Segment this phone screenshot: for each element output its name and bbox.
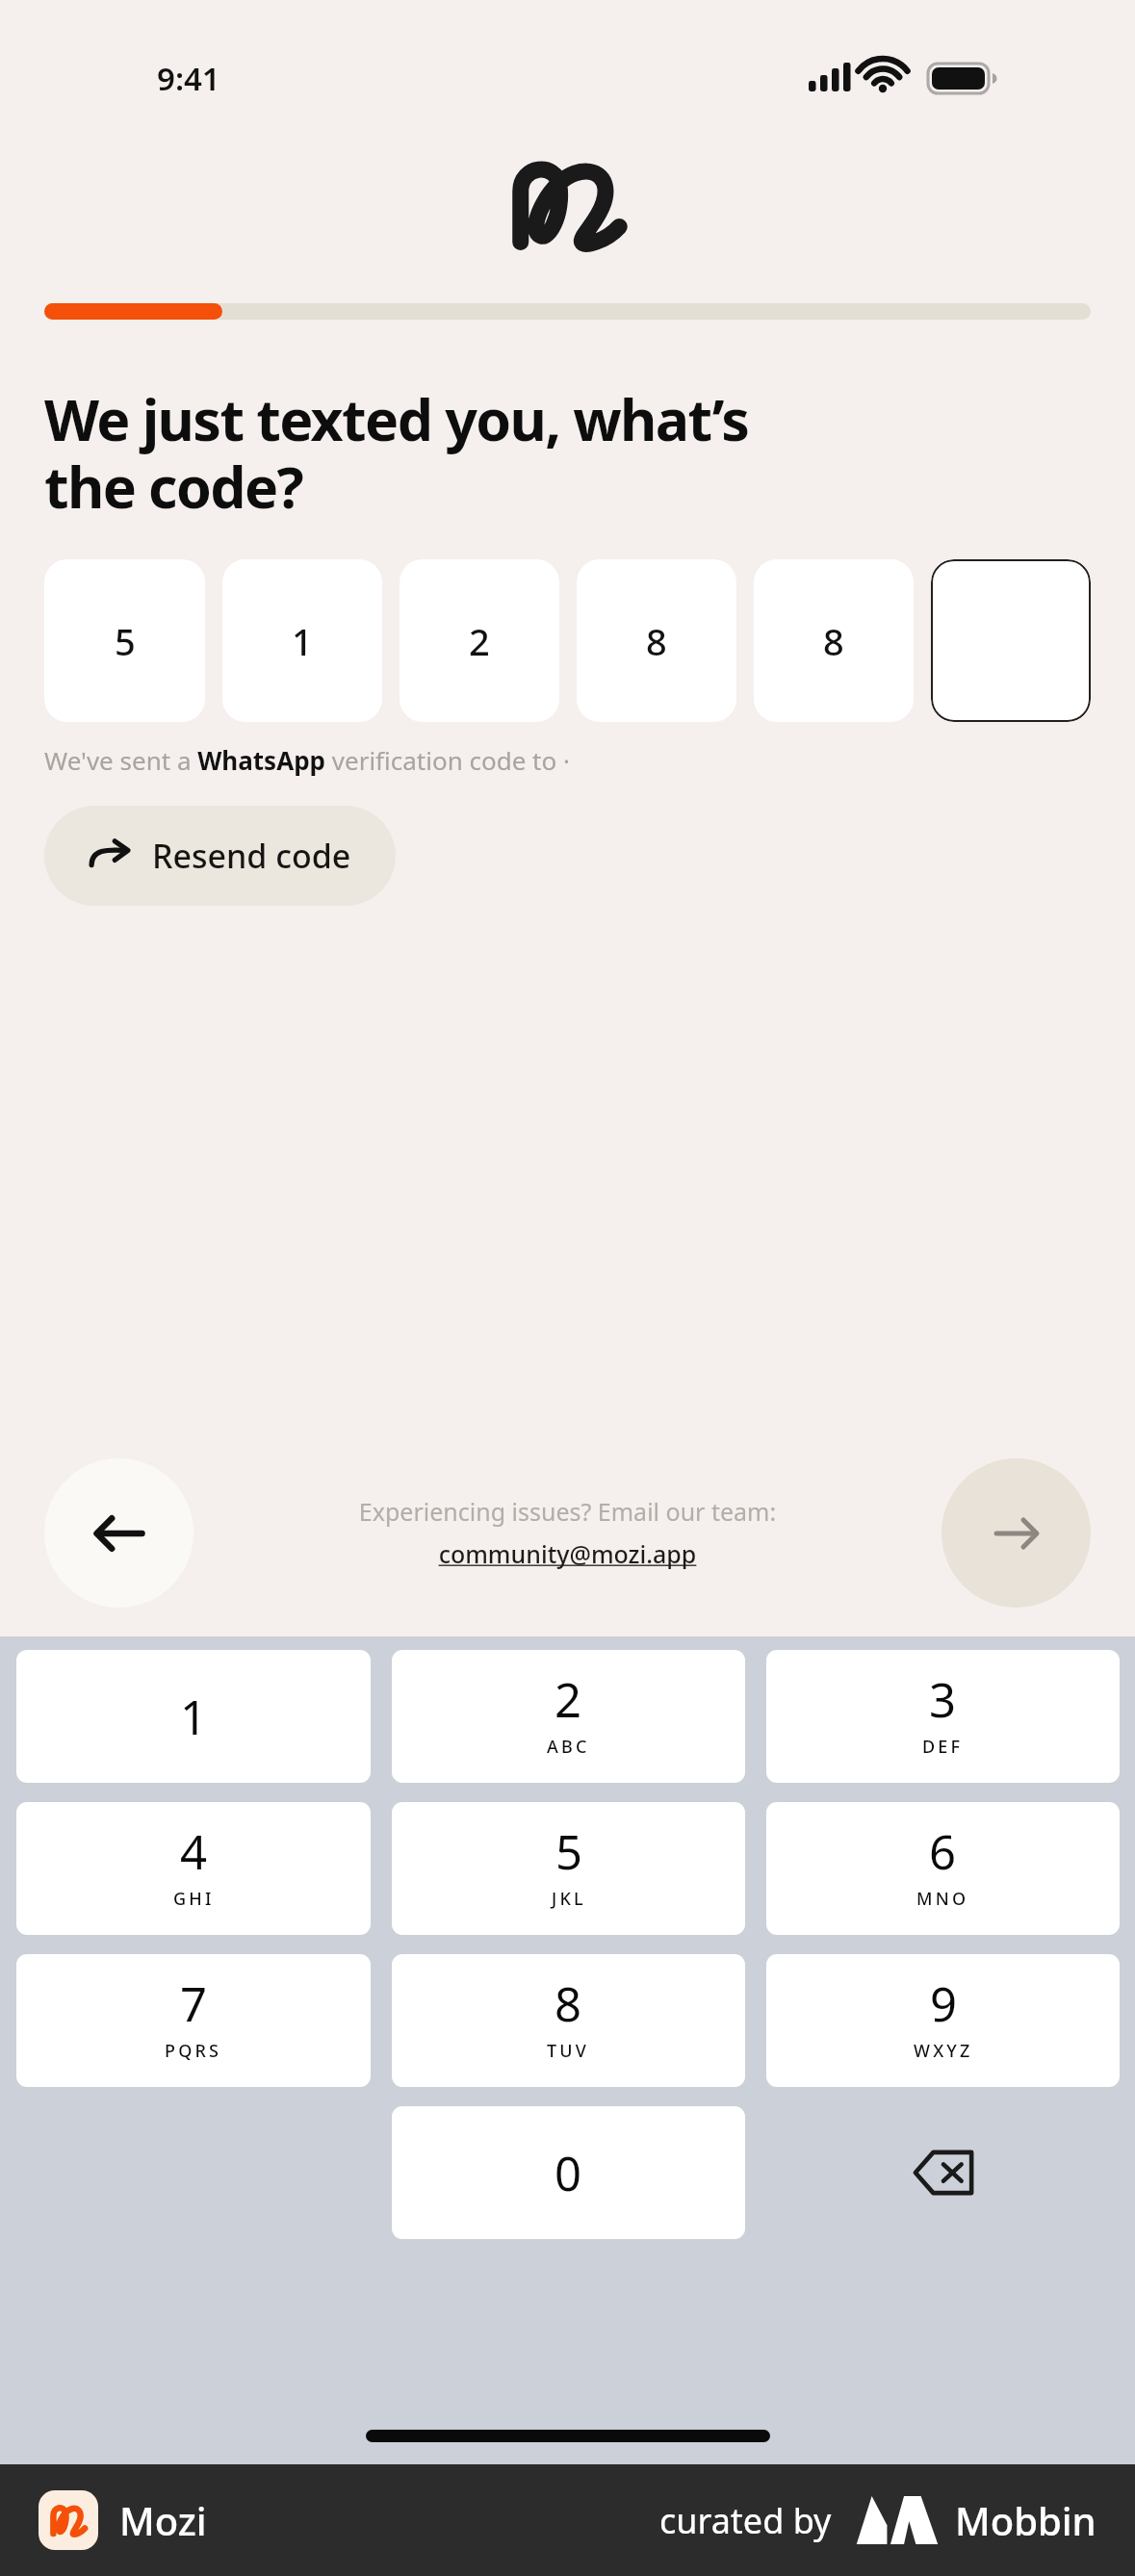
staticText: JKL <box>552 1887 586 1911</box>
button[interactable]: 8 <box>754 559 914 722</box>
button[interactable]: 0 <box>392 2106 745 2239</box>
staticText: DEF <box>922 1735 964 1759</box>
button[interactable]: 7 <box>16 1954 371 2087</box>
button[interactable]: 3 <box>766 1650 1120 1783</box>
button[interactable]: 8 <box>577 559 736 722</box>
staticText: 8 <box>823 616 844 666</box>
button[interactable]: 8 <box>392 1954 745 2087</box>
button[interactable]: Backspace <box>766 2106 1120 2239</box>
button[interactable]: 6 <box>766 1802 1120 1935</box>
button[interactable]: 2 <box>400 559 559 722</box>
staticText: We've sent a WhatsApp verification code … <box>44 743 570 777</box>
staticText: 1 <box>180 1685 208 1749</box>
button[interactable]: 1 <box>222 559 382 722</box>
staticText: MNO <box>916 1887 969 1911</box>
staticText: 3 <box>929 1667 957 1732</box>
button[interactable]: 5 <box>392 1802 745 1935</box>
button[interactable]: Back <box>44 1458 193 1608</box>
button[interactable]: 2 <box>392 1650 745 1783</box>
staticText: 0 <box>555 2141 582 2205</box>
button[interactable]: 9 <box>766 1954 1120 2087</box>
staticText: PQRS <box>165 2039 222 2063</box>
button[interactable]: 5 <box>44 559 205 722</box>
staticText: Mobbin <box>955 2494 1096 2546</box>
staticText: 2 <box>555 1667 582 1732</box>
staticText: 9 <box>930 1971 958 2036</box>
staticText: 8 <box>646 616 667 666</box>
staticText: 6 <box>929 1819 957 1884</box>
staticText: Experiencing issues? Email our team: <box>193 1495 942 1528</box>
button[interactable]: community@mozi.app <box>193 1537 942 1570</box>
staticText: Resend code <box>152 834 351 878</box>
staticText: 9:41 <box>157 57 220 100</box>
staticText: 2 <box>469 616 490 666</box>
staticText: 8 <box>555 1971 582 2036</box>
button[interactable]: Resend code <box>44 806 396 906</box>
button[interactable]: Continue <box>942 1458 1091 1608</box>
button[interactable] <box>931 559 1091 722</box>
staticText: 5 <box>555 1819 583 1884</box>
staticText: Mozi <box>119 2494 207 2546</box>
staticText: 1 <box>292 616 313 666</box>
staticText: 5 <box>115 616 136 666</box>
staticText: GHI <box>173 1887 215 1911</box>
staticText: 7 <box>180 1971 208 2036</box>
staticText: 4 <box>180 1819 208 1884</box>
staticText: We just texted you, what’s the code? <box>44 380 749 525</box>
staticText: ABC <box>547 1735 590 1759</box>
button[interactable]: 1 <box>16 1650 371 1783</box>
button[interactable]: 4 <box>16 1802 371 1935</box>
staticText: TUV <box>547 2039 590 2063</box>
staticText: WXYZ <box>914 2039 973 2063</box>
staticText: curated by <box>659 2497 832 2544</box>
